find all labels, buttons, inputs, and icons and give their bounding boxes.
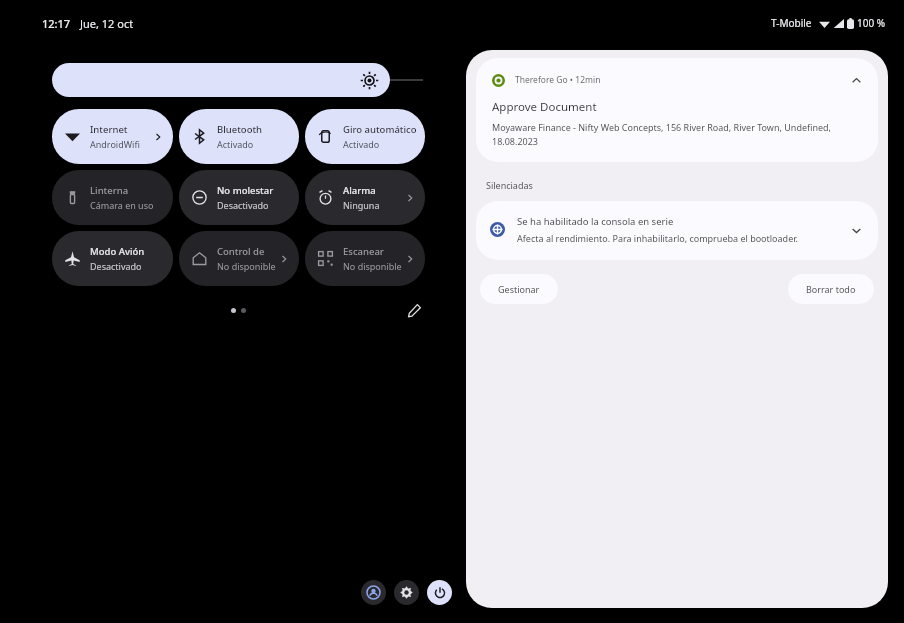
- staticText: No disponible: [217, 260, 276, 272]
- button[interactable]: Contraer: [846, 70, 866, 90]
- button[interactable]: Editar: [403, 300, 425, 320]
- staticText: Bluetooth: [217, 123, 263, 136]
- staticText: Internet: [90, 123, 128, 136]
- staticText: Silenciadas: [486, 179, 533, 191]
- staticText: 100 %: [857, 16, 886, 30]
- button[interactable]: Therefore Go • 12min: [476, 58, 878, 162]
- staticText: Borrar todo: [806, 283, 856, 295]
- staticText: No disponible: [343, 260, 402, 272]
- button[interactable]: Modo Avión: [52, 231, 173, 286]
- button[interactable]: Linterna: [52, 170, 173, 225]
- button[interactable]: Se ha habilitado la consola en serie: [476, 201, 878, 260]
- button[interactable]: Internet: [52, 109, 173, 164]
- staticText: No molestar: [217, 184, 274, 197]
- button[interactable]: Gestionar: [480, 274, 558, 304]
- staticText: Alarma: [343, 184, 376, 197]
- staticText: 12:17: [42, 16, 71, 31]
- staticText: Linterna: [90, 184, 129, 197]
- staticText: Modo Avión: [90, 245, 145, 258]
- staticText: Activado: [217, 138, 254, 150]
- staticText: Moyaware Finance - Nifty Web Concepts, 1…: [492, 121, 866, 148]
- staticText: Therefore Go • 12min: [515, 74, 601, 86]
- button[interactable]: Giro automático: [305, 109, 425, 164]
- button[interactable]: Usuario: [361, 580, 386, 605]
- button[interactable]: Borrar todo: [788, 274, 874, 304]
- staticText: Escanear código: [343, 245, 405, 258]
- button[interactable]: Encendido: [427, 580, 452, 605]
- staticText: T-Mobile: [771, 16, 812, 30]
- button[interactable]: Ajustes: [394, 580, 419, 605]
- staticText: Gestionar: [498, 283, 540, 295]
- staticText: Cámara en uso: [90, 199, 154, 211]
- button[interactable]: Brillo: [52, 63, 390, 97]
- button[interactable]: Bluetooth: [179, 109, 299, 164]
- staticText: Desactivado: [90, 260, 142, 272]
- button[interactable]: Escanear código: [305, 231, 425, 286]
- staticText: Desactivado: [217, 199, 269, 211]
- button[interactable]: No molestar: [179, 170, 299, 225]
- button[interactable]: Control de disp.: [179, 231, 299, 286]
- staticText: Afecta al rendimiento. Para inhabilitarl…: [517, 232, 798, 244]
- staticText: Control de disp.: [217, 245, 279, 258]
- staticText: Approve Document: [492, 99, 597, 115]
- button[interactable]: Expandir: [846, 220, 866, 240]
- staticText: Giro automático: [343, 123, 417, 136]
- staticText: Ninguna alarma: [343, 199, 405, 211]
- staticText: AndroidWifi: [90, 138, 140, 150]
- staticText: Activado: [343, 138, 380, 150]
- button[interactable]: Alarma: [305, 170, 425, 225]
- staticText: Jue, 12 oct: [80, 16, 134, 31]
- staticText: Se ha habilitado la consola en serie: [517, 215, 674, 228]
